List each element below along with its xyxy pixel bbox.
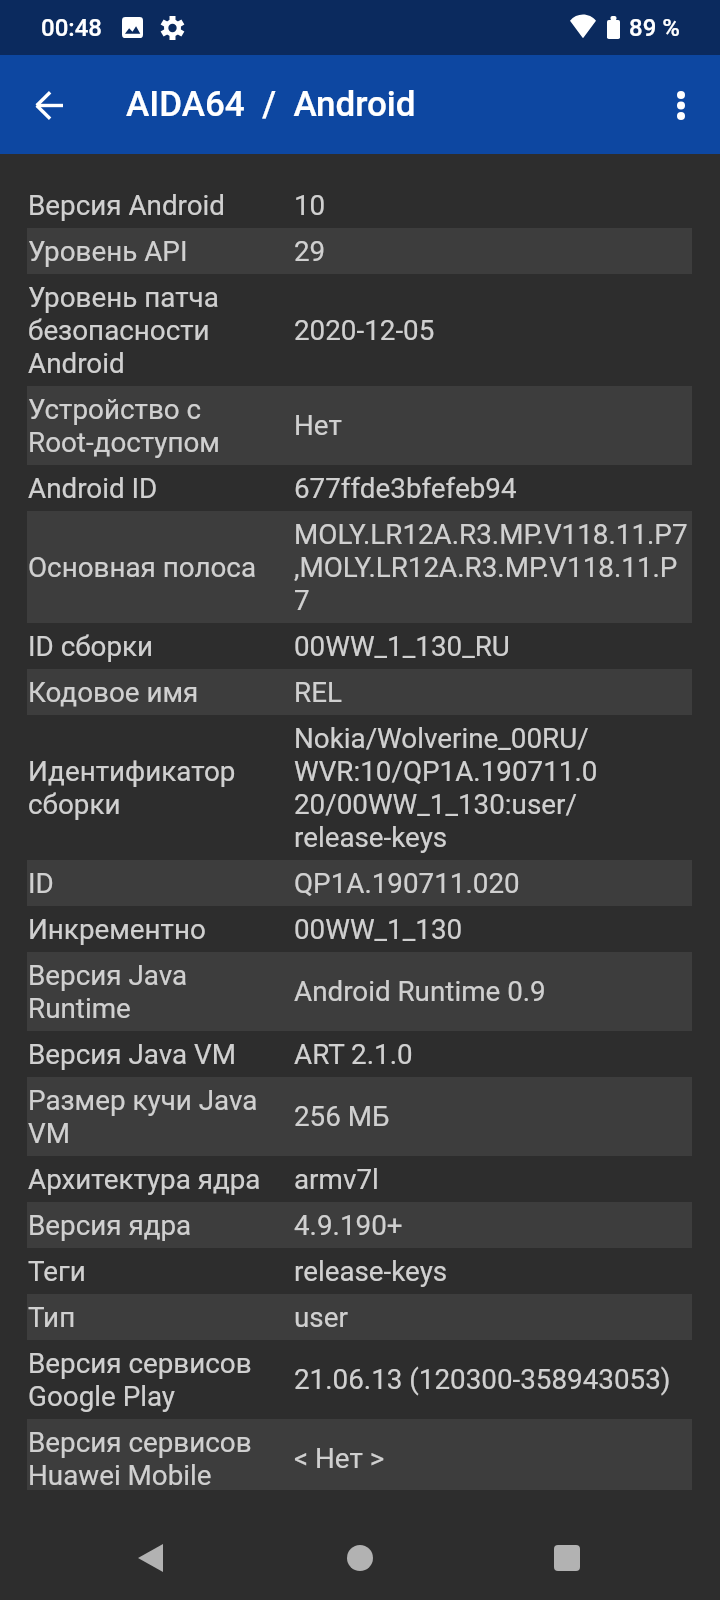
staticText: Тип bbox=[28, 1301, 294, 1334]
staticText: Теги bbox=[28, 1255, 294, 1288]
staticText: Версия ядра bbox=[28, 1209, 294, 1242]
staticText: REL bbox=[294, 676, 692, 709]
staticText: user bbox=[294, 1301, 692, 1334]
staticText: Основная полоса bbox=[28, 551, 294, 584]
button[interactable]: Версия ядра bbox=[0, 1202, 720, 1248]
button[interactable]: Версия сервисов Huawei Mobile bbox=[0, 1419, 720, 1498]
staticText: 29 bbox=[294, 235, 692, 268]
staticText: 256 МБ bbox=[294, 1100, 692, 1133]
button[interactable]: ID сборки bbox=[0, 623, 720, 669]
staticText: Архитектура ядра bbox=[28, 1163, 294, 1196]
staticText: Версия Java Runtime bbox=[28, 959, 294, 1025]
button[interactable]: Тип bbox=[0, 1294, 720, 1340]
staticText: Устройство с Root-доступом bbox=[28, 393, 294, 459]
button[interactable]: Инкрементно bbox=[0, 906, 720, 952]
staticText: Версия сервисов Google Play bbox=[28, 1347, 294, 1413]
staticText: Уровень патча безопасности Android bbox=[28, 281, 294, 380]
staticText: 2020-12-05 bbox=[294, 314, 692, 347]
staticText: ID сборки bbox=[28, 630, 294, 663]
staticText: 00:48 bbox=[41, 14, 102, 42]
button[interactable]: Версия Java Runtime bbox=[0, 952, 720, 1031]
button[interactable]: Уровень патча безопасности Android bbox=[0, 274, 720, 386]
button[interactable]: Back bbox=[7, 63, 91, 147]
button[interactable]: Home bbox=[318, 1516, 402, 1600]
staticText: release-keys bbox=[294, 1255, 692, 1288]
staticText: Android Runtime 0.9 bbox=[294, 975, 692, 1008]
staticText: Версия Android bbox=[28, 189, 294, 222]
staticText: 10 bbox=[294, 189, 692, 222]
staticText: Нет bbox=[294, 409, 692, 442]
staticText: < Нет > bbox=[294, 1442, 692, 1475]
staticText: Версия Java VM bbox=[28, 1038, 294, 1071]
button[interactable]: Размер кучи Java VM bbox=[0, 1077, 720, 1156]
button[interactable]: Back bbox=[108, 1516, 192, 1600]
button[interactable]: Android ID bbox=[0, 465, 720, 511]
button[interactable]: Версия Android bbox=[0, 182, 720, 228]
button[interactable]: Кодовое имя bbox=[0, 669, 720, 715]
button[interactable]: Теги bbox=[0, 1248, 720, 1294]
button[interactable]: Версия Java VM bbox=[0, 1031, 720, 1077]
button[interactable]: Идентификатор сборки bbox=[0, 715, 720, 860]
staticText: ID bbox=[28, 867, 294, 900]
staticText: Android ID bbox=[28, 472, 294, 505]
button[interactable]: Основная полоса bbox=[0, 511, 720, 623]
staticText: 00WW_1_130_RU bbox=[294, 630, 692, 663]
staticText: MOLY.LR12A.R3.MP.V118.11.P7 ,MOLY.LR12A.… bbox=[294, 518, 692, 617]
staticText: Версия сервисов Huawei Mobile bbox=[28, 1426, 294, 1492]
staticText: Nokia/Wolverine_00RU/ WVR:10/QP1A.190711… bbox=[294, 722, 692, 854]
staticText: ART 2.1.0 bbox=[294, 1038, 692, 1071]
staticText: armv7l bbox=[294, 1163, 692, 1196]
staticText: Кодовое имя bbox=[28, 676, 294, 709]
button[interactable]: Recent apps bbox=[525, 1516, 609, 1600]
staticText: 00WW_1_130 bbox=[294, 913, 692, 946]
button[interactable]: More options bbox=[639, 63, 720, 147]
staticText: 4.9.190+ bbox=[294, 1209, 692, 1242]
staticText: Размер кучи Java VM bbox=[28, 1084, 294, 1150]
button[interactable]: Уровень API bbox=[0, 228, 720, 274]
staticText: QP1A.190711.020 bbox=[294, 867, 692, 900]
button[interactable]: Устройство с Root-доступом bbox=[0, 386, 720, 465]
staticText: 89 % bbox=[629, 14, 680, 42]
button[interactable]: Архитектура ядра bbox=[0, 1156, 720, 1202]
staticText: Инкрементно bbox=[28, 913, 294, 946]
staticText: AIDA64 / Android bbox=[126, 84, 416, 125]
staticText: Идентификатор сборки bbox=[28, 755, 294, 821]
staticText: 21.06.13 (120300-358943053) bbox=[294, 1363, 692, 1396]
staticText: 677ffde3bfefeb94 bbox=[294, 472, 692, 505]
staticText: Уровень API bbox=[28, 235, 294, 268]
button[interactable]: Версия сервисов Google Play bbox=[0, 1340, 720, 1419]
button[interactable]: ID bbox=[0, 860, 720, 906]
